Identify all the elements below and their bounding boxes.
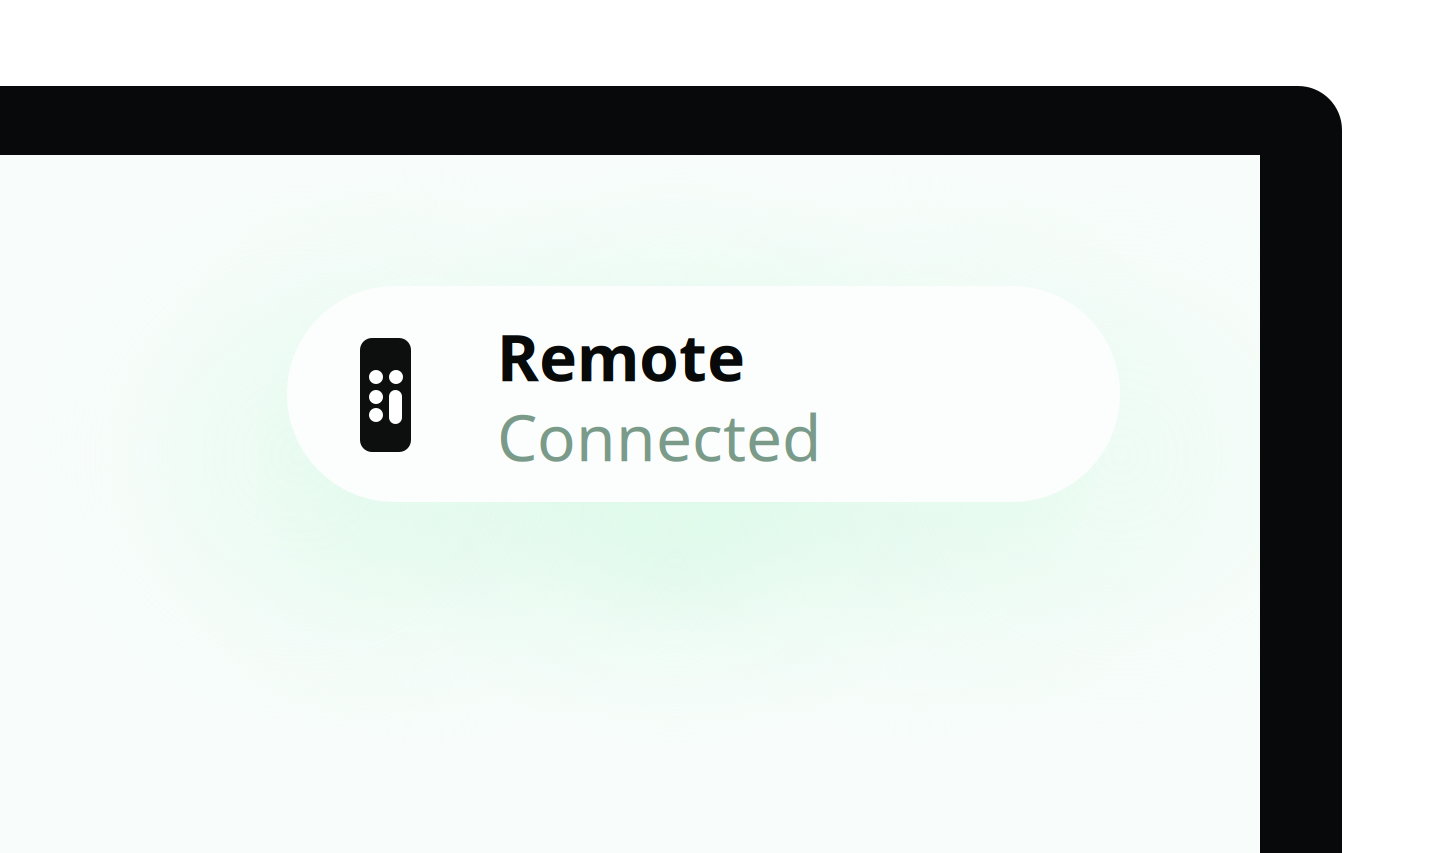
button[interactable]	[0, 0, 1450, 853]
staticText: Connected	[497, 394, 821, 479]
staticText: Remote	[497, 314, 745, 399]
